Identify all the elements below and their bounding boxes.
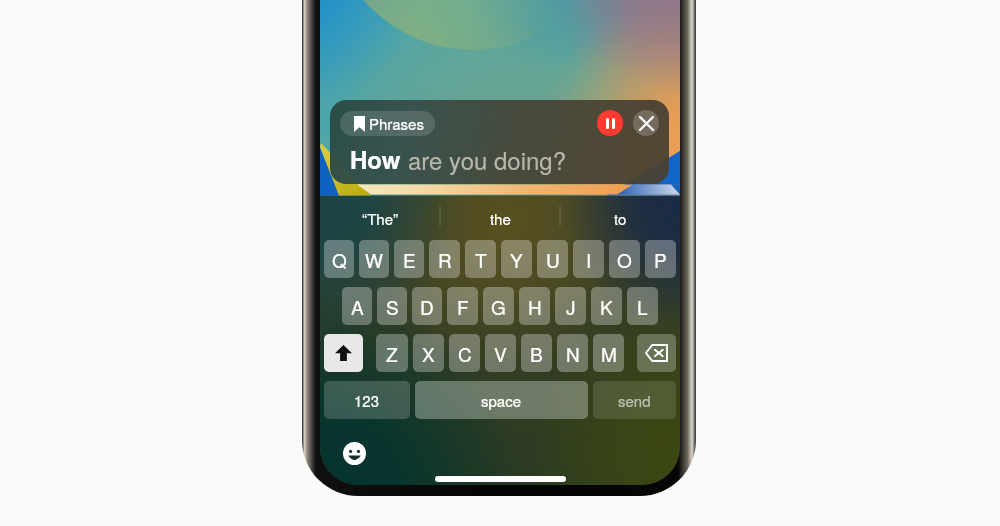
button[interactable]: J <box>555 287 586 325</box>
button[interactable]: the <box>440 196 560 240</box>
staticText: to <box>614 208 627 229</box>
button[interactable]: U <box>537 240 568 278</box>
button[interactable]: to <box>560 196 680 240</box>
button[interactable]: R <box>429 240 460 278</box>
staticText: O <box>617 246 632 273</box>
button[interactable]: Shift <box>324 334 363 372</box>
staticText: Y <box>510 246 523 273</box>
staticText: V <box>494 340 507 367</box>
button[interactable]: Z <box>376 334 408 372</box>
button[interactable]: Q <box>324 240 354 278</box>
button[interactable]: Backspace <box>637 334 676 372</box>
button[interactable]: O <box>609 240 640 278</box>
button[interactable]: W <box>359 240 389 278</box>
staticText: I <box>586 246 592 273</box>
button[interactable]: Pause <box>597 110 623 136</box>
staticText: space <box>481 390 522 411</box>
button[interactable]: send <box>593 381 676 419</box>
button[interactable]: D <box>412 287 442 325</box>
staticText: E <box>403 246 416 273</box>
staticText: F <box>457 293 469 320</box>
staticText: B <box>530 340 543 367</box>
button[interactable]: 123 <box>324 381 410 419</box>
button[interactable]: I <box>573 240 604 278</box>
staticText: N <box>566 340 580 367</box>
staticText: A <box>351 293 364 320</box>
staticText: Q <box>332 246 347 273</box>
staticText: R <box>438 246 452 273</box>
staticText: W <box>365 246 383 273</box>
staticText: T <box>475 246 487 273</box>
staticText: J <box>566 293 576 320</box>
button[interactable]: Phrases <box>340 111 435 136</box>
staticText: U <box>546 246 560 273</box>
button[interactable]: space <box>415 381 588 419</box>
button[interactable]: M <box>593 334 624 372</box>
staticText: M <box>601 340 617 367</box>
button[interactable]: N <box>557 334 588 372</box>
staticText: P <box>654 246 667 273</box>
staticText: How <box>350 142 408 176</box>
button[interactable]: L <box>627 287 658 325</box>
button[interactable]: “The” <box>320 196 440 240</box>
staticText: D <box>420 293 434 320</box>
button[interactable]: H <box>519 287 550 325</box>
button[interactable]: A <box>342 287 372 325</box>
staticText: “The” <box>362 208 398 229</box>
staticText: L <box>637 293 648 320</box>
button[interactable]: V <box>485 334 516 372</box>
button[interactable]: B <box>521 334 552 372</box>
staticText: Phrases <box>369 113 424 134</box>
staticText: Z <box>386 340 398 367</box>
button[interactable]: S <box>377 287 407 325</box>
button[interactable]: F <box>447 287 478 325</box>
button[interactable]: E <box>394 240 424 278</box>
staticText: K <box>600 293 613 320</box>
button[interactable]: P <box>645 240 676 278</box>
button[interactable]: Emoji <box>343 442 366 465</box>
staticText: the <box>490 208 511 229</box>
button[interactable]: Close <box>633 110 659 136</box>
button[interactable]: X <box>413 334 444 372</box>
staticText: X <box>422 340 435 367</box>
staticText: C <box>458 340 472 367</box>
staticText: 123 <box>354 390 380 411</box>
staticText: H <box>528 293 542 320</box>
button[interactable]: Y <box>501 240 532 278</box>
staticText: G <box>491 293 506 320</box>
staticText: S <box>386 293 399 320</box>
button[interactable]: G <box>483 287 514 325</box>
staticText: are you doing? <box>408 142 567 176</box>
button[interactable]: C <box>449 334 480 372</box>
button[interactable]: T <box>465 240 496 278</box>
staticText: send <box>618 390 651 411</box>
button[interactable]: K <box>591 287 622 325</box>
